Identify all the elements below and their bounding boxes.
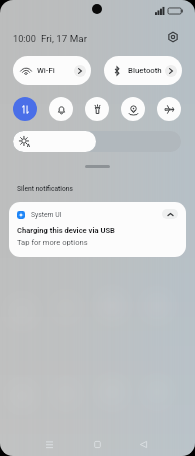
button[interactable]: Sound [49, 97, 73, 121]
staticText: Bluetooth [128, 66, 162, 75]
button[interactable]: Home [88, 431, 107, 456]
button[interactable]: Mobile data [13, 97, 37, 121]
button[interactable]: Back [134, 431, 153, 456]
staticText: Fri, 17 Mar [41, 33, 87, 44]
button[interactable]: Location [121, 97, 145, 121]
button[interactable]: Collapse [162, 209, 178, 219]
button[interactable]: Flashlight [85, 97, 109, 121]
staticText: Charging this device via USB [17, 226, 115, 235]
button[interactable]: System UI [9, 202, 186, 257]
staticText: Silent notifications [17, 185, 73, 193]
button[interactable]: Brightness [13, 131, 181, 152]
button[interactable]: Settings [165, 29, 181, 45]
button[interactable]: Bluetooth [104, 56, 182, 85]
staticText: 10:00 [13, 33, 36, 44]
button[interactable]: Wi-Fi [13, 56, 91, 85]
staticText: Wi-Fi [37, 66, 55, 75]
button[interactable]: Airplane mode [157, 97, 181, 121]
button[interactable]: Recents [40, 431, 59, 456]
staticText: Tap for more options [17, 238, 88, 247]
staticText: System UI [31, 211, 62, 219]
